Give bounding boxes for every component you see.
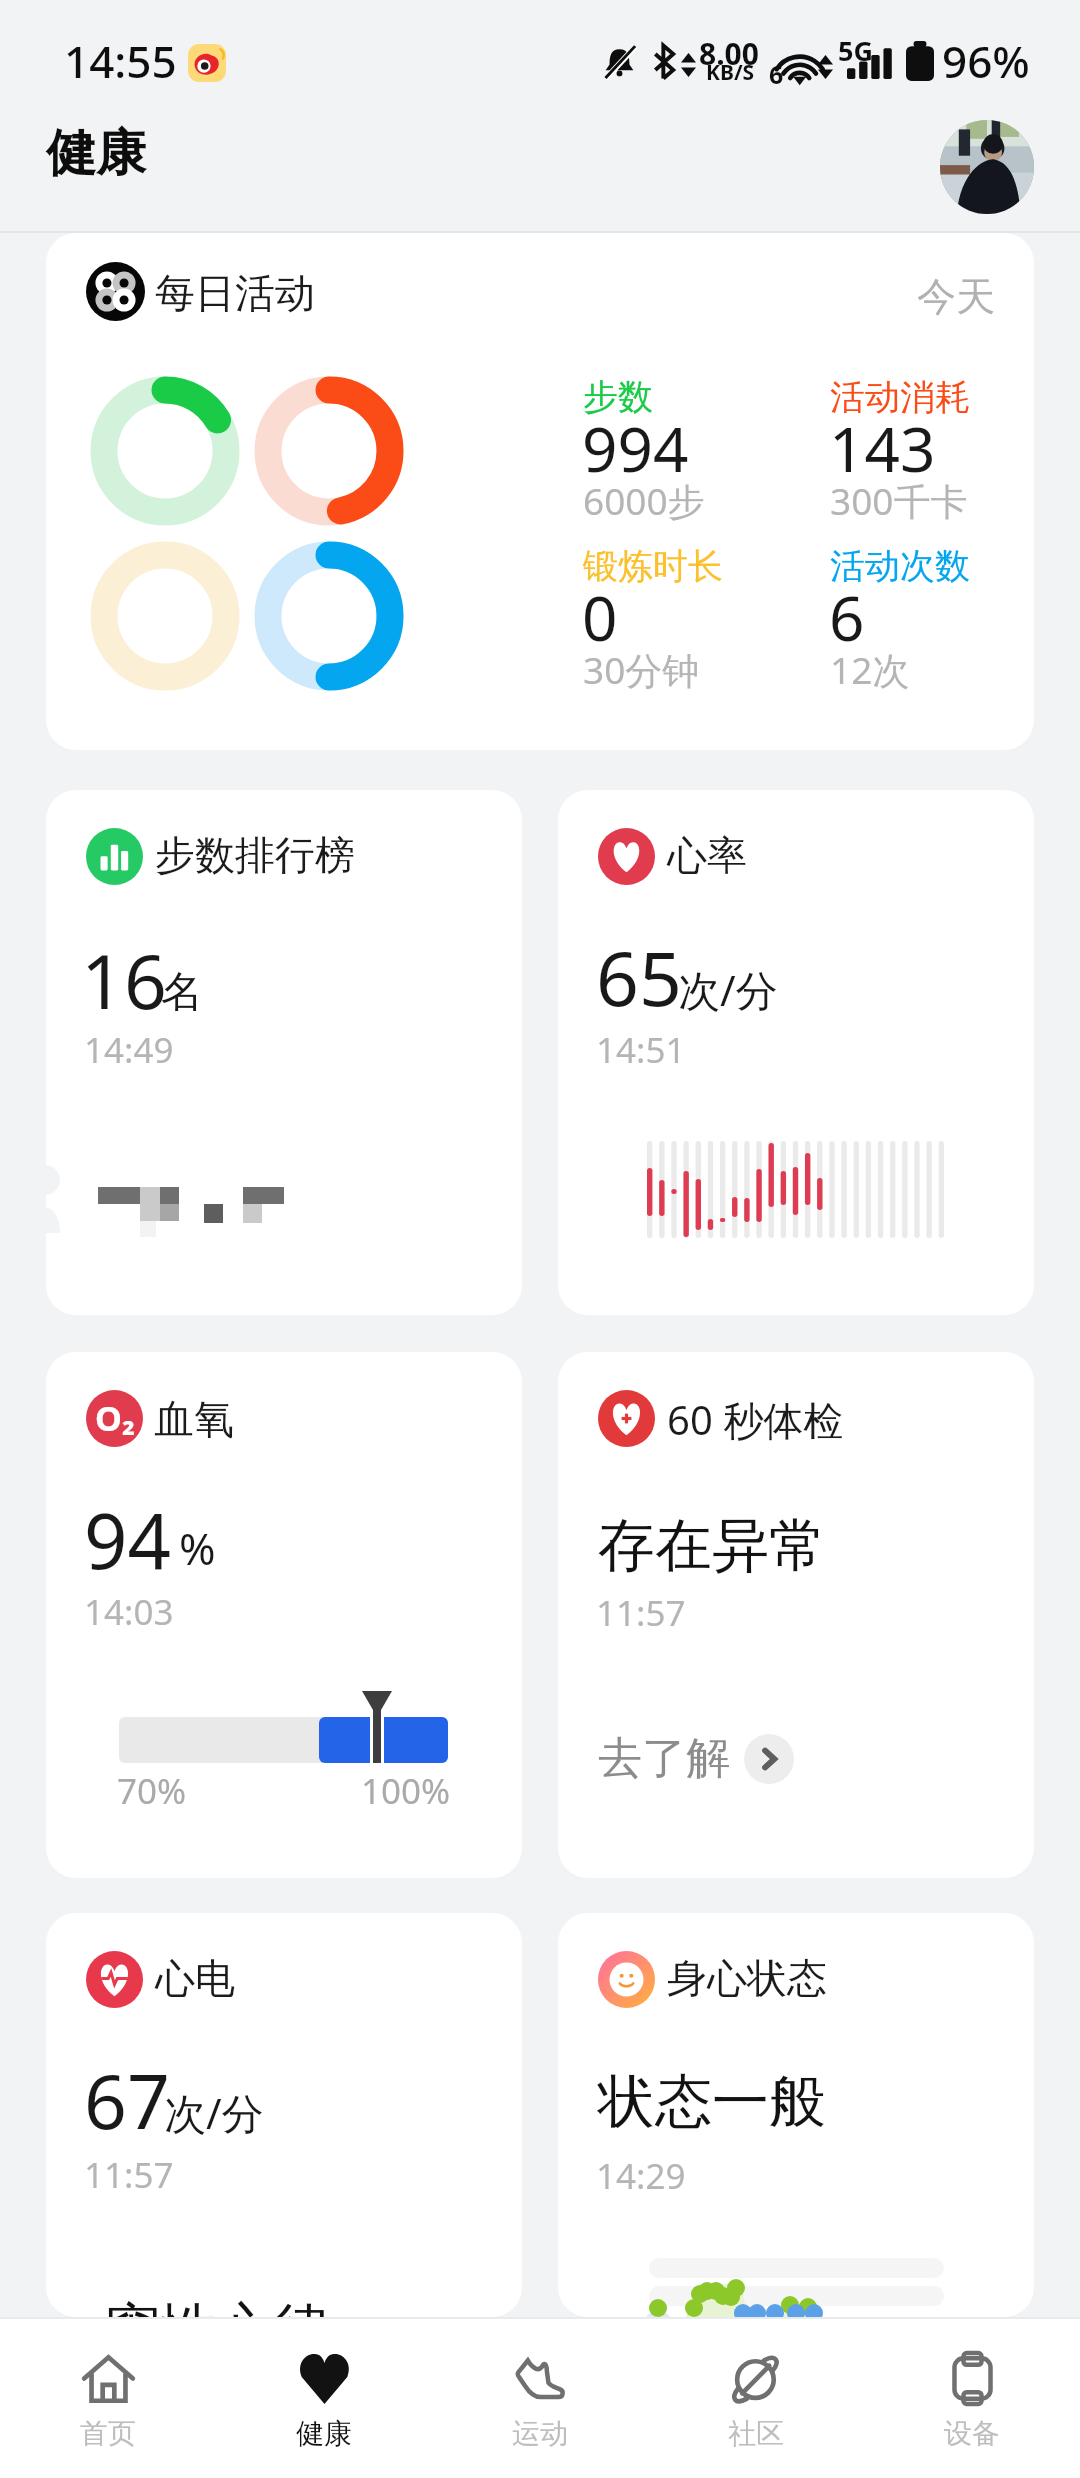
staticText: 8.00 (699, 33, 759, 74)
button[interactable]: 每日活动 (46, 233, 1034, 750)
staticText: 名 (161, 966, 203, 1019)
staticText: KB/S (706, 58, 755, 87)
staticText: 心率 (667, 830, 747, 880)
button[interactable]: 去了解 (598, 1731, 794, 1786)
button[interactable]: 健康 (216, 2319, 432, 2478)
staticText: % (179, 1518, 216, 1578)
staticText: 300千卡 (830, 475, 968, 526)
staticText: 94 (84, 1488, 171, 1592)
staticText: 去了解 (598, 1731, 730, 1786)
staticText: 窦性心律 (103, 2294, 331, 2317)
staticText: 16 (81, 929, 167, 1031)
staticText: 11:57 (596, 1589, 686, 1637)
staticText: 心电 (155, 1953, 235, 2003)
staticText: 14:49 (84, 1026, 174, 1074)
staticText: 身心状态 (667, 1953, 827, 2003)
staticText: 100% (361, 1767, 451, 1815)
button[interactable]: 心电 (46, 1913, 522, 2317)
button[interactable]: 运动 (432, 2319, 648, 2478)
staticText: 健康 (296, 2416, 352, 2451)
button[interactable]: 60 秒体检 (558, 1352, 1034, 1878)
staticText: 30分钟 (583, 644, 700, 695)
staticText: 6 (769, 57, 784, 91)
staticText: 每日活动 (155, 268, 315, 318)
staticText: 设备 (944, 2416, 1000, 2451)
staticText: 14:29 (596, 2152, 686, 2200)
staticText: 14:55 (64, 31, 177, 91)
staticText: 锻炼时长 (583, 544, 723, 588)
staticText: 社区 (728, 2416, 784, 2451)
staticText: 步数 (583, 375, 653, 419)
staticText: 67 (84, 2049, 170, 2151)
staticText: 143 (829, 406, 936, 490)
staticText: 活动次数 (830, 544, 970, 588)
button[interactable]: 身心状态 (558, 1913, 1034, 2317)
staticText: 14:51 (596, 1026, 686, 1074)
staticText: 0 (582, 575, 618, 659)
button[interactable]: 首页 (0, 2319, 216, 2478)
staticText: 次/分 (678, 961, 778, 1018)
button[interactable]: 设备 (864, 2319, 1080, 2478)
staticText: 12次 (830, 644, 910, 695)
staticText: 今天 (917, 272, 995, 321)
staticText: 5G (838, 32, 873, 69)
staticText: 11:57 (84, 2151, 174, 2199)
staticText: 存在异常 (598, 1510, 826, 1582)
staticText: 994 (582, 406, 689, 490)
staticText: 活动消耗 (830, 375, 970, 419)
button[interactable]: 社区 (648, 2319, 864, 2478)
staticText: 6000步 (583, 475, 705, 526)
staticText: 96% (942, 31, 1030, 91)
staticText: 6 (829, 575, 865, 659)
staticText: 运动 (512, 2416, 568, 2451)
staticText: 健康 (46, 122, 146, 185)
staticText: 65 (596, 926, 682, 1028)
staticText: 14:03 (84, 1588, 174, 1636)
staticText: 步数排行榜 (155, 830, 355, 880)
staticText: O₂ (95, 1395, 135, 1441)
staticText: 状态一般 (598, 2066, 826, 2138)
staticText: 次/分 (164, 2084, 264, 2141)
button[interactable]: O₂ (46, 1352, 522, 1878)
button[interactable]: 步数排行榜 (46, 790, 522, 1315)
staticText: 血氧 (154, 1394, 234, 1444)
button[interactable]: 心率 (558, 790, 1034, 1315)
button[interactable]: Profile (940, 120, 1034, 214)
staticText: 60 秒体检 (667, 1392, 844, 1447)
staticText: 首页 (80, 2416, 136, 2451)
staticText: 70% (117, 1767, 187, 1815)
